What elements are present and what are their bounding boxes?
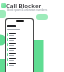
staticText: Call Blocker: [6, 2, 42, 10]
staticText: block spam & unknown numbers: [7, 8, 48, 12]
